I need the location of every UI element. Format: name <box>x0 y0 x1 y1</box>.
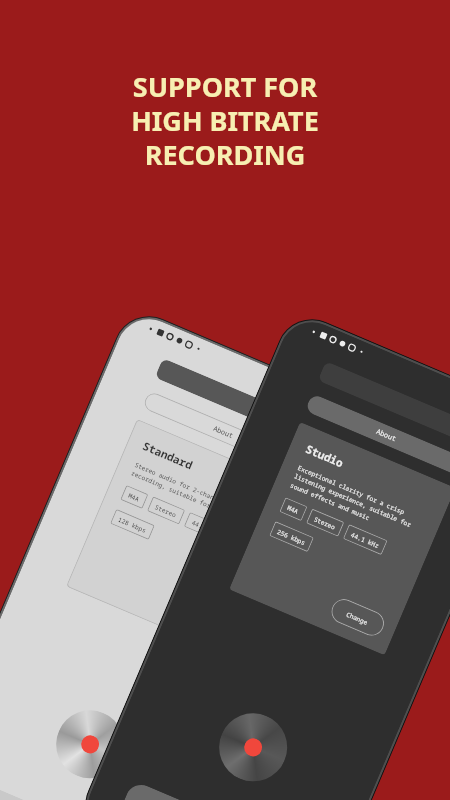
staticText: Change <box>345 610 370 626</box>
staticText: 128 kbps <box>117 515 148 534</box>
staticText: Standard <box>140 438 195 472</box>
button[interactable]: M4A <box>120 485 148 509</box>
staticText: About <box>211 424 235 441</box>
staticText: 256 kbps <box>276 527 307 546</box>
staticText: Stereo audio for 2-channel recording, su… <box>130 460 257 528</box>
staticText: M4A <box>127 491 141 503</box>
staticText: 44.1 kHz <box>191 518 221 537</box>
button[interactable]: Stereo <box>147 496 185 525</box>
button[interactable]: 44.1 kHz <box>184 512 229 543</box>
button[interactable]: Change <box>328 595 388 640</box>
staticText: 44.1 kHz <box>350 530 381 549</box>
button[interactable]: 128 kbps <box>110 509 155 540</box>
staticText: Stereo <box>154 502 178 519</box>
button[interactable]: Stereo <box>306 508 344 537</box>
button[interactable]: Change <box>165 592 225 637</box>
staticText: SUPPORT FOR HIGH BITRATE RECORDING <box>131 68 319 173</box>
staticText: Exceptional clarity for a crisp listenin… <box>289 463 420 540</box>
button[interactable]: Record <box>209 703 298 792</box>
staticText: Stereo <box>313 514 337 531</box>
button[interactable] <box>0 777 154 800</box>
staticText: M4A <box>286 503 300 515</box>
button[interactable]: M4A <box>279 497 308 521</box>
button[interactable]: 256 kbps <box>269 521 314 552</box>
button[interactable]: About <box>142 390 305 474</box>
button[interactable]: Record <box>46 700 135 789</box>
button[interactable]: About <box>305 393 450 477</box>
button[interactable] <box>109 780 317 800</box>
staticText: About <box>374 427 398 444</box>
staticText: Studio <box>303 441 346 470</box>
button[interactable]: 44.1 kHz <box>343 524 388 555</box>
